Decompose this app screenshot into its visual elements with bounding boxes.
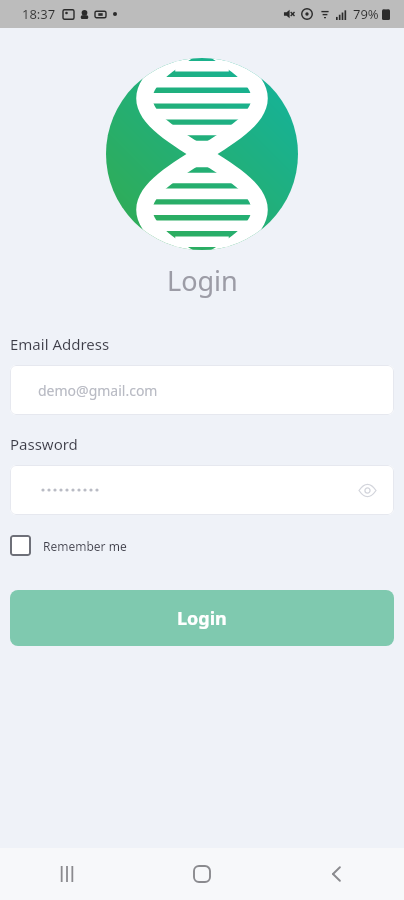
button[interactable]: Login	[10, 590, 394, 646]
button[interactable]: Remember me	[10, 531, 127, 560]
button[interactable]: demo@gmail.com	[10, 365, 394, 415]
staticText: Login	[167, 262, 238, 299]
button[interactable]: Back	[312, 849, 362, 899]
button[interactable]: Show password	[354, 477, 380, 503]
button[interactable]: Show password	[10, 465, 394, 515]
staticText: Login	[177, 606, 227, 631]
button[interactable]: Home	[177, 849, 227, 899]
staticText: demo@gmail.com	[38, 381, 158, 400]
button[interactable]: Recent apps	[42, 849, 92, 899]
staticText: 18:37	[22, 5, 56, 23]
staticText: Remember me	[43, 538, 127, 554]
staticText: 79%	[353, 5, 379, 23]
staticText: Password	[10, 434, 78, 454]
staticText: Email Address	[10, 334, 110, 354]
